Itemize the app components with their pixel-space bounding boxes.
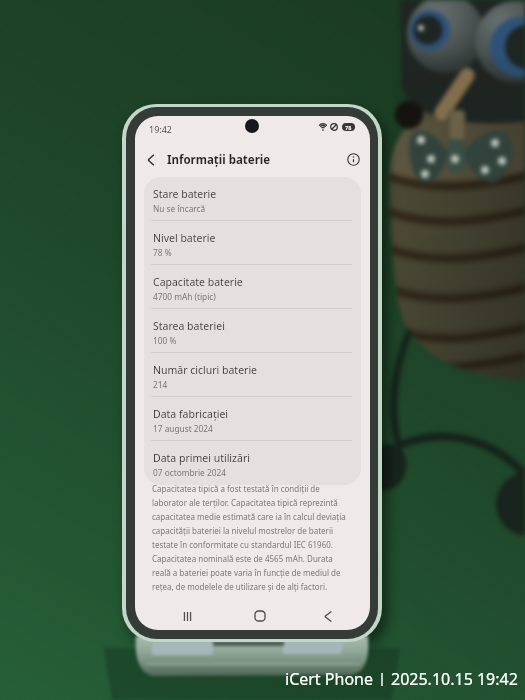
button[interactable]: Starea bateriei [144,309,361,352]
staticText: Nivel baterie [153,231,216,245]
staticText: 07 octombrie 2024 [153,467,226,478]
button[interactable]: Data fabricației [144,397,361,440]
staticText: Starea bateriei [153,319,225,333]
staticText: 19:42 [149,123,173,135]
staticText: 78 % [153,247,172,258]
button[interactable]: Back [135,142,167,177]
button[interactable]: Nivel baterie [144,221,361,264]
staticText: 2025.10.15 19:42 [391,668,518,690]
staticText: 4700 mAh (tipic) [153,291,216,302]
button[interactable]: Recents [166,603,209,629]
button[interactable]: Home [238,603,281,629]
button[interactable]: Data primei utilizări [144,441,361,485]
staticText: 78 [345,124,352,131]
staticText: Capacitate baterie [153,275,243,289]
button[interactable]: Număr cicluri baterie [144,353,361,396]
staticText: Data primei utilizări [153,451,250,465]
staticText: iCert Phone [285,668,373,690]
staticText: Număr cicluri baterie [153,363,258,377]
button[interactable]: Stare baterie [144,177,361,220]
button[interactable]: Capacitate baterie [144,265,361,308]
staticText: Nu se încarcă [153,203,206,214]
button[interactable]: Back [306,603,349,629]
button[interactable]: Info [336,142,370,177]
staticText: 100 % [153,335,177,346]
staticText: 214 [153,379,168,390]
staticText: Capacitatea tipică a fost testată în con… [152,483,353,592]
staticText: Stare baterie [153,187,217,201]
staticText: Data fabricației [153,407,229,421]
staticText: Informații baterie [167,152,271,168]
staticText: 17 august 2024 [153,423,213,434]
